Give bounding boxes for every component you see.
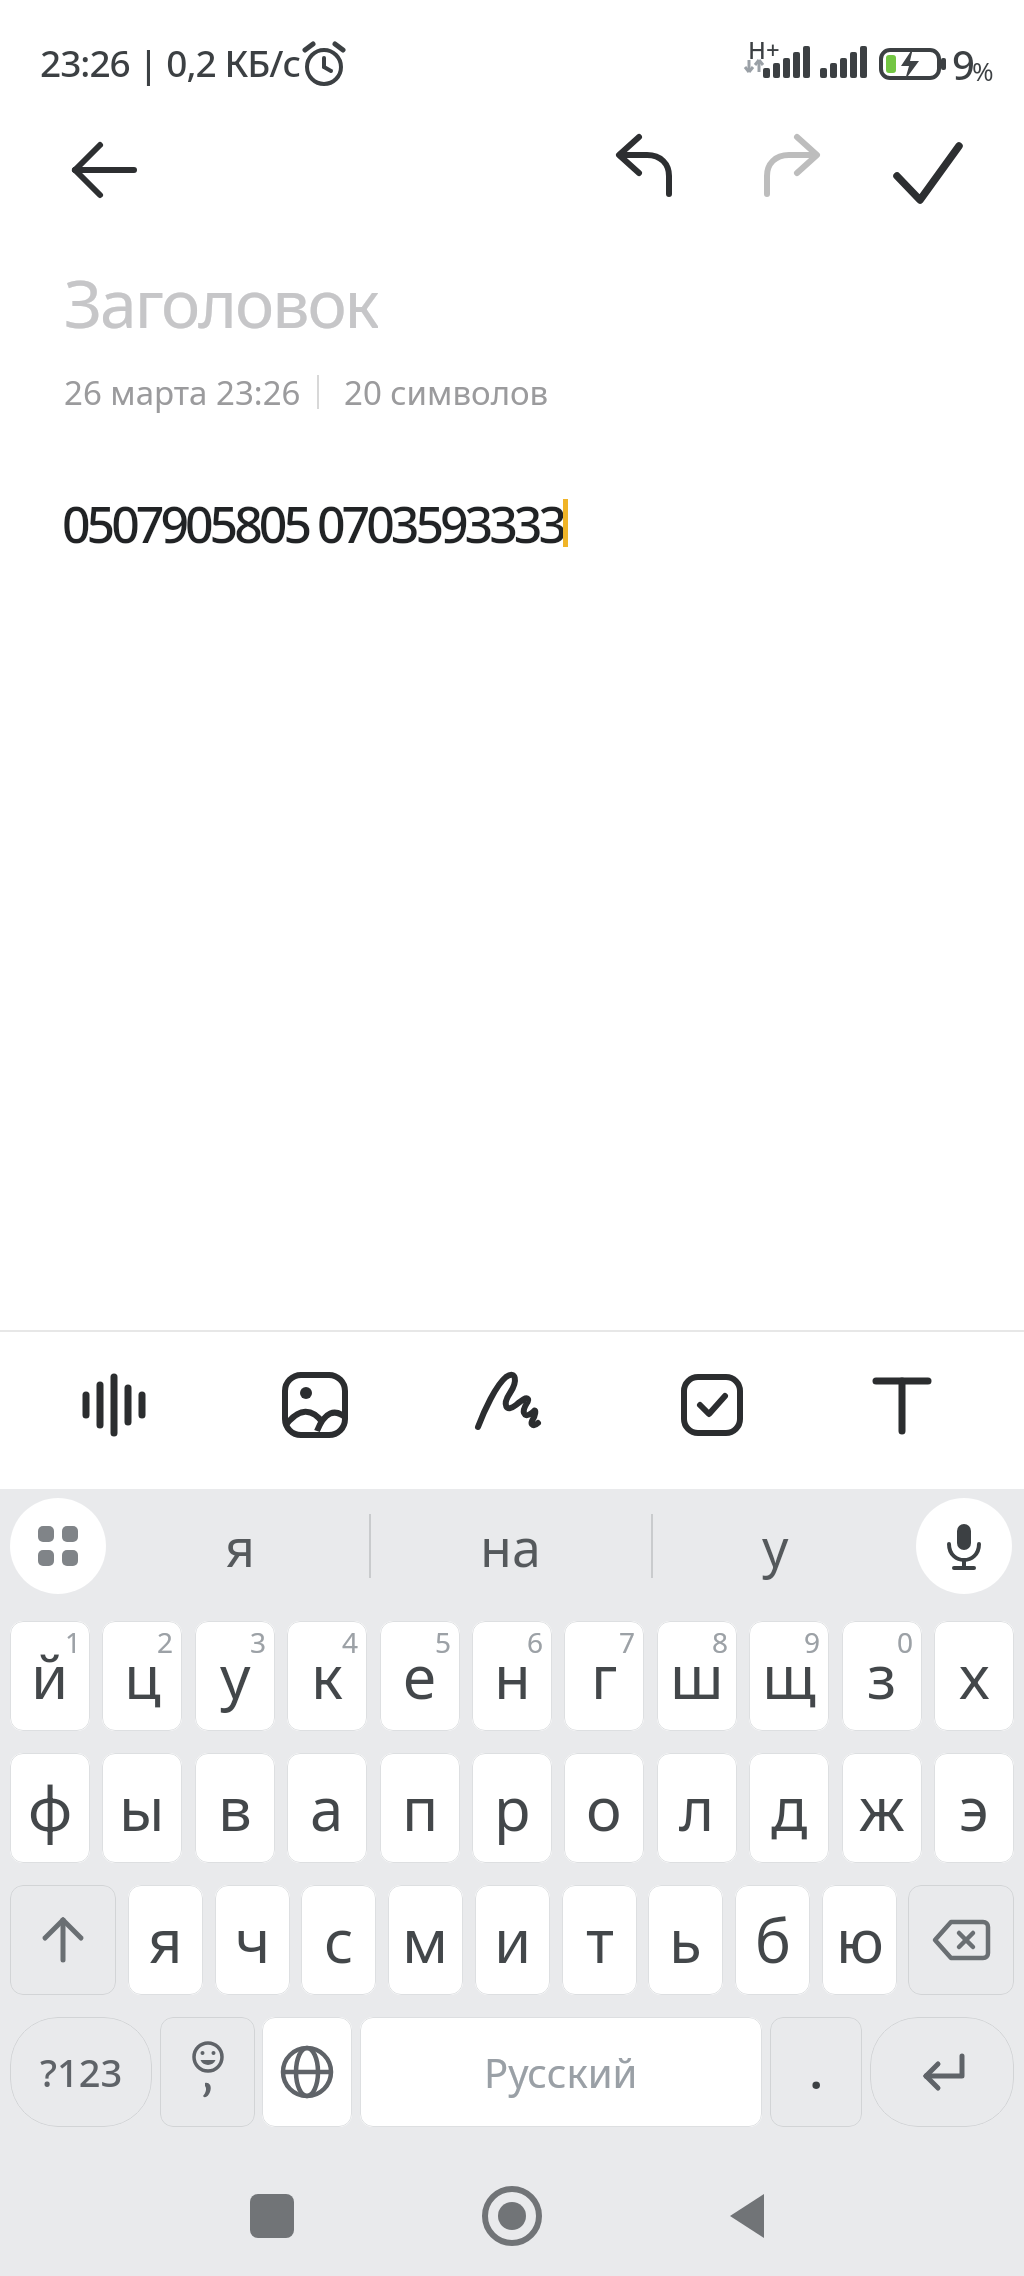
button[interactable] [883, 132, 971, 220]
button[interactable] [676, 1369, 748, 1441]
button[interactable]: Русский [360, 2017, 762, 2127]
staticText: п [402, 1767, 439, 1849]
button[interactable] [60, 126, 148, 214]
staticText: 8 [712, 1623, 729, 1661]
button[interactable]: м [388, 1885, 463, 1995]
button[interactable]: ю [822, 1885, 897, 1995]
button[interactable]: на [410, 1498, 610, 1594]
button[interactable]: щ [749, 1621, 829, 1731]
staticText: 20 символов [344, 370, 549, 415]
staticText: 9 [952, 37, 975, 91]
button[interactable] [279, 1369, 351, 1441]
button[interactable] [603, 128, 691, 216]
staticText: й [31, 1635, 69, 1717]
button[interactable]: э [934, 1753, 1014, 1863]
button[interactable]: ш [657, 1621, 737, 1731]
staticText: 6 [527, 1623, 544, 1661]
button[interactable] [160, 2017, 255, 2127]
button[interactable]: ч [215, 1885, 290, 1995]
staticText: ж [859, 1767, 905, 1849]
button[interactable]: о [564, 1753, 644, 1863]
button[interactable]: я [128, 1885, 203, 1995]
staticText: . [810, 2042, 823, 2102]
staticText: я [225, 1511, 256, 1582]
staticText: ш [670, 1635, 724, 1717]
button[interactable]: х [934, 1621, 1014, 1731]
button[interactable]: ?123 [10, 2017, 152, 2127]
button[interactable]: ф [10, 1753, 90, 1863]
staticText: г [591, 1635, 618, 1717]
staticText: % [972, 53, 994, 88]
button[interactable]: к [287, 1621, 367, 1731]
button[interactable] [476, 1369, 548, 1441]
staticText: H+ [748, 33, 780, 66]
staticText: щ [762, 1635, 816, 1717]
staticText: 7 [619, 1623, 636, 1661]
button[interactable]: ц [102, 1621, 182, 1731]
button[interactable] [908, 1885, 1014, 1995]
staticText: м [402, 1899, 449, 1981]
staticText: а [310, 1767, 344, 1849]
staticText: д [771, 1767, 808, 1849]
button[interactable] [10, 1885, 116, 1995]
button[interactable] [745, 128, 833, 216]
staticText: р [494, 1767, 531, 1849]
staticText: Заголовок [64, 257, 378, 337]
button[interactable]: п [380, 1753, 460, 1863]
staticText: ?123 [40, 2046, 123, 2098]
staticText: ц [124, 1635, 161, 1717]
staticText: 4 [342, 1623, 359, 1661]
staticText: ю [836, 1899, 884, 1981]
button[interactable] [866, 1369, 938, 1441]
staticText: 3 [250, 1623, 267, 1661]
button[interactable] [10, 1498, 106, 1594]
button[interactable]: с [301, 1885, 376, 1995]
staticText: 23:26 | 0,2 КБ/с [40, 37, 301, 87]
button[interactable] [916, 1498, 1012, 1594]
button[interactable]: б [735, 1885, 810, 1995]
button[interactable] [718, 2184, 782, 2248]
staticText: к [311, 1635, 343, 1717]
button[interactable]: й [10, 1621, 90, 1731]
button[interactable] [262, 2017, 352, 2127]
button[interactable]: . [770, 2017, 862, 2127]
button[interactable] [78, 1369, 150, 1441]
button[interactable]: е [380, 1621, 460, 1731]
staticText: я [148, 1899, 183, 1981]
staticText: в [218, 1767, 252, 1849]
staticText: б [755, 1899, 791, 1981]
staticText: т [586, 1899, 614, 1981]
staticText: у [762, 1511, 789, 1582]
staticText: ф [28, 1767, 73, 1849]
button[interactable] [480, 2184, 544, 2248]
staticText: Русский [484, 2045, 638, 2099]
staticText: 2 [157, 1623, 174, 1661]
button[interactable]: я [140, 1498, 340, 1594]
staticText: у [220, 1635, 251, 1717]
button[interactable]: л [657, 1753, 737, 1863]
button[interactable] [870, 2017, 1014, 2127]
button[interactable]: у [195, 1621, 275, 1731]
button[interactable]: з [842, 1621, 922, 1731]
button[interactable]: и [475, 1885, 550, 1995]
button[interactable]: г [564, 1621, 644, 1731]
staticText: е [403, 1635, 437, 1717]
button[interactable]: ж [842, 1753, 922, 1863]
staticText: о [586, 1767, 622, 1849]
button[interactable]: в [195, 1753, 275, 1863]
button[interactable]: у [675, 1498, 875, 1594]
staticText: ч [235, 1899, 271, 1981]
button[interactable]: т [562, 1885, 637, 1995]
staticText: с [324, 1899, 354, 1981]
button[interactable]: ы [102, 1753, 182, 1863]
staticText: н [494, 1635, 531, 1717]
button[interactable]: а [287, 1753, 367, 1863]
button[interactable]: ь [648, 1885, 723, 1995]
button[interactable] [240, 2184, 304, 2248]
button[interactable]: н [472, 1621, 552, 1731]
button[interactable]: р [472, 1753, 552, 1863]
button[interactable]: д [749, 1753, 829, 1863]
staticText: л [679, 1767, 715, 1849]
staticText: 1 [65, 1623, 82, 1661]
staticText: х [959, 1635, 990, 1717]
